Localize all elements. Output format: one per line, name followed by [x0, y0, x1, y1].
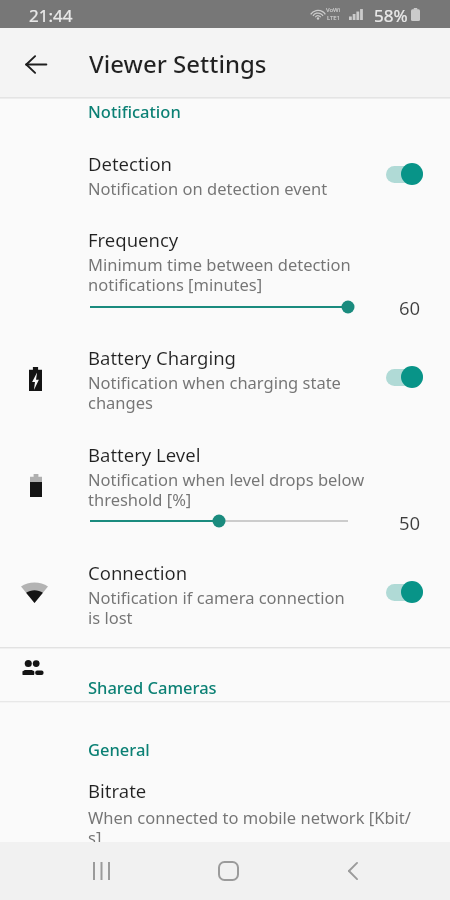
staticText: LTE1 [327, 14, 341, 22]
button[interactable]: Slider [78, 507, 360, 535]
button[interactable]: Toggle [386, 355, 434, 399]
staticText: 21:44 [29, 4, 73, 27]
staticText: Battery Charging [88, 345, 237, 370]
button[interactable]: Detection, Notification on detection eve… [0, 132, 450, 202]
button[interactable]: Notification [0, 93, 450, 129]
button[interactable]: Toggle [386, 152, 434, 196]
staticText: When connected to mobile network [Kbit/s… [88, 806, 418, 849]
staticText: Connection [88, 560, 188, 585]
staticText: Notification if camera connection is los… [88, 586, 354, 629]
staticText: Notification when charging state changes [88, 371, 354, 414]
button[interactable]: Navigate up [16, 44, 56, 84]
button[interactable]: Connection, Notification if camera conne… [0, 543, 450, 642]
staticText: Frequency [88, 227, 179, 252]
staticText: Detection [88, 151, 173, 176]
button[interactable]: Battery Level, Notification when level d… [0, 425, 450, 543]
button[interactable]: Home [196, 847, 260, 895]
button[interactable]: Slider [78, 293, 360, 321]
staticText: 60 [399, 295, 421, 320]
button[interactable]: General [0, 731, 450, 767]
button[interactable]: Bitrate, When connected to mobile networ… [0, 759, 450, 842]
button[interactable]: Back [321, 847, 385, 895]
staticText: 58% [374, 4, 408, 27]
staticText: Shared Cameras [88, 676, 217, 698]
staticText: Notification on detection event [88, 177, 328, 199]
button[interactable]: Recent apps [69, 847, 133, 895]
button[interactable]: Shared Cameras [0, 669, 450, 705]
staticText: 50 [399, 510, 421, 535]
staticText: Notification [88, 100, 181, 122]
staticText: Viewer Settings [89, 47, 267, 80]
button[interactable]: Battery Charging, Notification when char… [0, 326, 450, 423]
staticText: VoWi [326, 6, 341, 14]
staticText: Notification when level drops below thre… [88, 468, 370, 511]
staticText: Minimum time between detection notificat… [88, 253, 354, 296]
staticText: General [88, 738, 150, 760]
staticText: Battery Level [88, 442, 201, 467]
staticText: Bitrate [88, 778, 147, 803]
button[interactable]: Toggle [386, 570, 434, 614]
button[interactable]: Frequency, Minimum time between detectio… [0, 210, 450, 320]
